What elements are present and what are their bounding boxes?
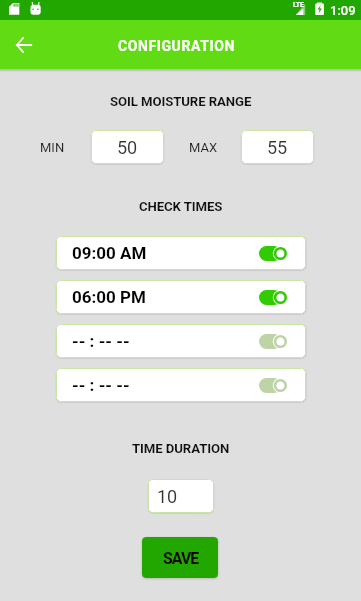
- other: Disabled: [259, 378, 287, 393]
- staticText: 1:09: [330, 3, 356, 18]
- staticText: 50: [117, 137, 138, 158]
- staticText: MIN: [40, 140, 65, 155]
- staticText: 06:00 PM: [72, 287, 146, 307]
- button[interactable]: 09:00 AM: [56, 236, 306, 270]
- staticText: 09:00 AM: [72, 243, 147, 263]
- staticText: LTE: [293, 1, 304, 9]
- other: Enabled: [259, 290, 287, 305]
- staticText: SAVE: [163, 549, 199, 568]
- button[interactable]: -- : -- --: [56, 368, 306, 402]
- button[interactable]: -- : -- --: [56, 324, 306, 358]
- staticText: CHECK TIMES: [139, 199, 223, 214]
- button[interactable]: 50: [91, 130, 164, 164]
- staticText: -- : -- --: [72, 331, 130, 351]
- button[interactable]: 10: [148, 479, 214, 513]
- button[interactable]: 06:00 PM: [56, 280, 306, 314]
- staticText: 10: [157, 486, 178, 507]
- other: Disabled: [259, 334, 287, 349]
- staticText: SOIL MOISTURE RANGE: [110, 94, 252, 109]
- staticText: MAX: [189, 140, 218, 155]
- button[interactable]: SAVE: [142, 537, 218, 578]
- staticText: TIME DURATION: [132, 441, 230, 456]
- other: Enabled: [259, 246, 287, 261]
- button[interactable]: Back: [8, 29, 40, 61]
- staticText: CONFIGURATION: [118, 38, 235, 54]
- staticText: 55: [267, 137, 288, 158]
- staticText: -- : -- --: [72, 375, 130, 395]
- button[interactable]: 55: [241, 130, 314, 164]
